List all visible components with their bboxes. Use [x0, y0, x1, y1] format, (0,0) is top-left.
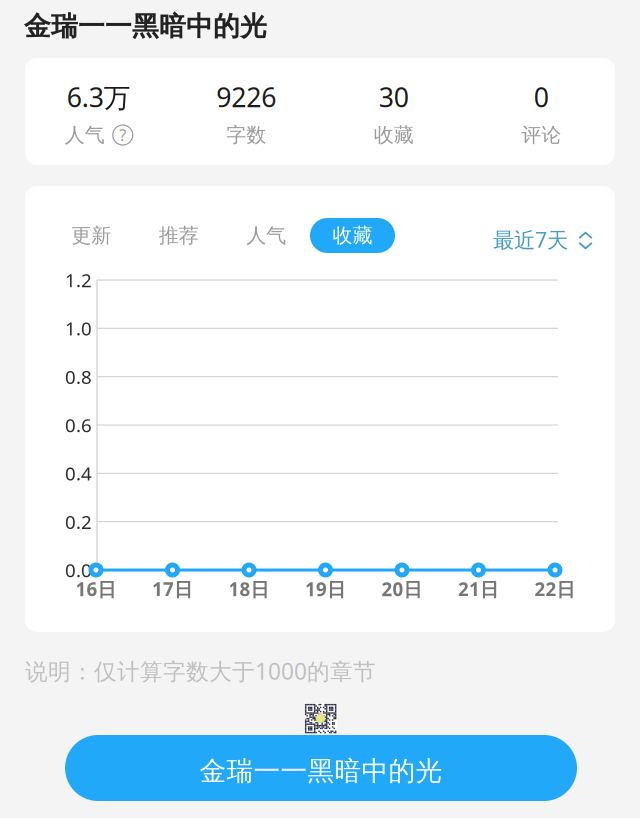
staticText: 0.6 — [65, 413, 92, 437]
staticText: 金瑞一一黑暗中的光 — [24, 10, 267, 43]
staticText: 1.0 — [65, 316, 92, 341]
button[interactable]: 更新 — [47, 218, 135, 253]
staticText: 30 — [379, 79, 409, 115]
staticText: 推荐 — [159, 223, 199, 248]
staticText: 0 — [534, 79, 549, 115]
staticText: 字数 — [226, 123, 266, 147]
staticText: 收藏 — [374, 123, 414, 147]
button[interactable]: 最近7天 — [493, 222, 593, 257]
staticText: 0.0 — [65, 558, 92, 582]
staticText: 21日 — [458, 577, 499, 601]
staticText: 收藏 — [332, 223, 372, 248]
staticText: 19日 — [305, 577, 346, 601]
button[interactable]: 收藏 — [310, 218, 395, 253]
staticText: 16日 — [75, 577, 116, 601]
staticText: 6.3万 — [67, 79, 131, 115]
staticText: ? — [119, 124, 126, 146]
staticText: 0.8 — [65, 364, 92, 389]
staticText: 人气 — [246, 223, 286, 248]
staticText: 20日 — [381, 577, 422, 601]
staticText: 0.4 — [65, 461, 92, 486]
staticText: 17日 — [152, 577, 193, 601]
staticText: 22日 — [534, 577, 575, 601]
staticText: 评论 — [521, 123, 561, 147]
staticText: 18日 — [228, 577, 269, 601]
button[interactable]: 推荐 — [135, 218, 222, 253]
staticText: 金瑞一一黑暗中的光 — [199, 755, 442, 787]
button[interactable]: 人气 — [222, 218, 310, 253]
staticText: 1.2 — [65, 268, 92, 292]
staticText: 人气 — [65, 123, 105, 147]
button[interactable]: 金瑞一一黑暗中的光 — [65, 735, 577, 801]
staticText: 说明：仅计算字数大于1000的章节 — [25, 656, 376, 686]
staticText: 更新 — [71, 223, 111, 248]
staticText: 最近7天 — [493, 225, 568, 254]
staticText: 0.2 — [65, 509, 92, 534]
staticText: 9226 — [216, 79, 276, 115]
